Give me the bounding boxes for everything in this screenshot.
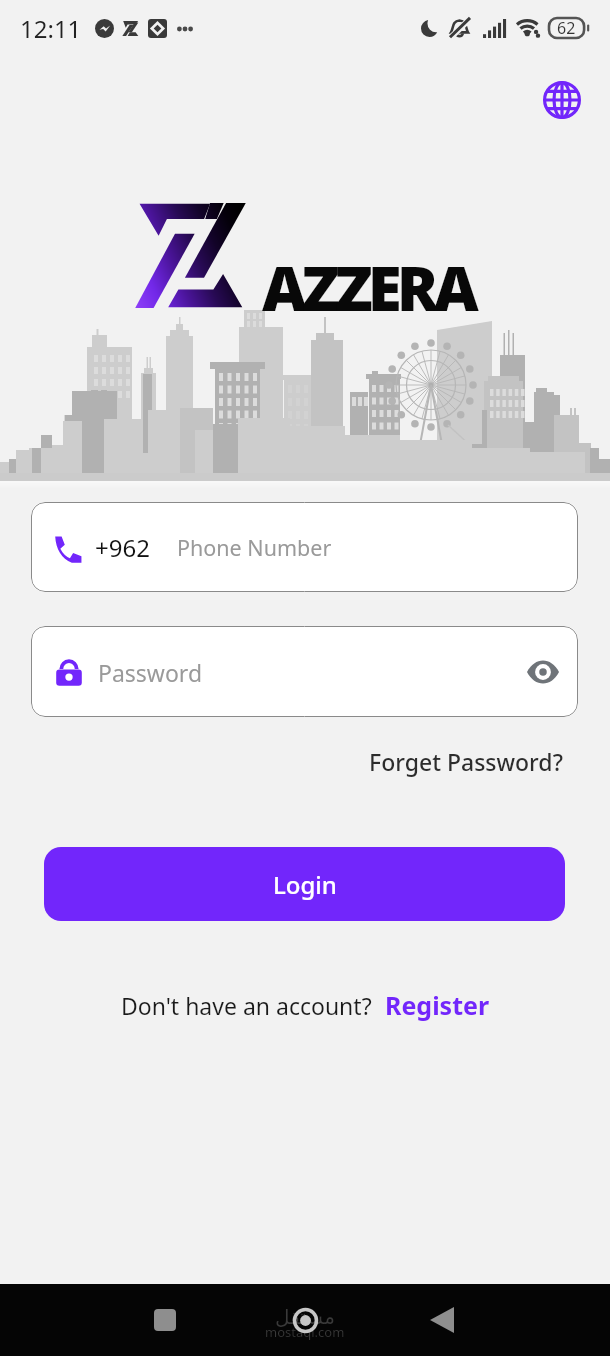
button[interactable]: +962 bbox=[31, 502, 578, 592]
button[interactable]: Recents bbox=[143, 1298, 187, 1342]
staticText: Phone Number bbox=[177, 533, 332, 562]
button[interactable]: Show password bbox=[516, 645, 570, 699]
staticText: Password bbox=[98, 657, 203, 688]
button[interactable]: Login bbox=[44, 847, 565, 921]
staticText: Login bbox=[273, 868, 337, 901]
button[interactable]: Home bbox=[282, 1297, 328, 1343]
button[interactable]: Language bbox=[534, 72, 590, 128]
staticText: 62 bbox=[557, 17, 576, 39]
staticText: مستقل bbox=[275, 1305, 335, 1328]
button[interactable]: Password bbox=[31, 626, 578, 717]
button[interactable]: Register bbox=[385, 988, 490, 1022]
staticText: AZZERA bbox=[262, 245, 474, 329]
staticText: Forget Password? bbox=[369, 746, 563, 777]
button[interactable]: Forget Password? bbox=[355, 738, 577, 785]
staticText: mostaql.com bbox=[265, 1323, 345, 1341]
staticText: Don't have an account? bbox=[121, 990, 372, 1021]
staticText: 12:11 bbox=[20, 12, 82, 45]
staticText: Register bbox=[385, 988, 490, 1022]
button[interactable]: Back bbox=[420, 1298, 464, 1342]
staticText: +962 bbox=[95, 531, 150, 564]
